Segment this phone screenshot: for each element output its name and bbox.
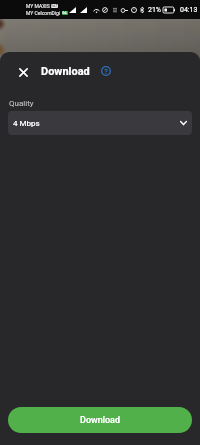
staticText: 4 Mbps bbox=[13, 119, 40, 128]
staticText: VoLTE bbox=[51, 4, 58, 8]
staticText: Download bbox=[80, 415, 120, 426]
staticText: Quality bbox=[9, 99, 34, 108]
button[interactable]: Help bbox=[95, 60, 117, 82]
staticText: MY CelcomDigi bbox=[26, 10, 61, 16]
staticText: MY MAXIS bbox=[26, 3, 50, 9]
staticText: Download bbox=[41, 65, 90, 78]
staticText: 04:13 bbox=[180, 6, 198, 14]
staticText: VoLTE bbox=[62, 11, 68, 15]
button[interactable]: Download bbox=[8, 407, 192, 433]
staticText: ? bbox=[104, 67, 108, 76]
button[interactable]: 4 Mbps bbox=[8, 111, 192, 135]
button[interactable]: Close bbox=[8, 57, 38, 87]
staticText: 21% bbox=[148, 6, 161, 14]
